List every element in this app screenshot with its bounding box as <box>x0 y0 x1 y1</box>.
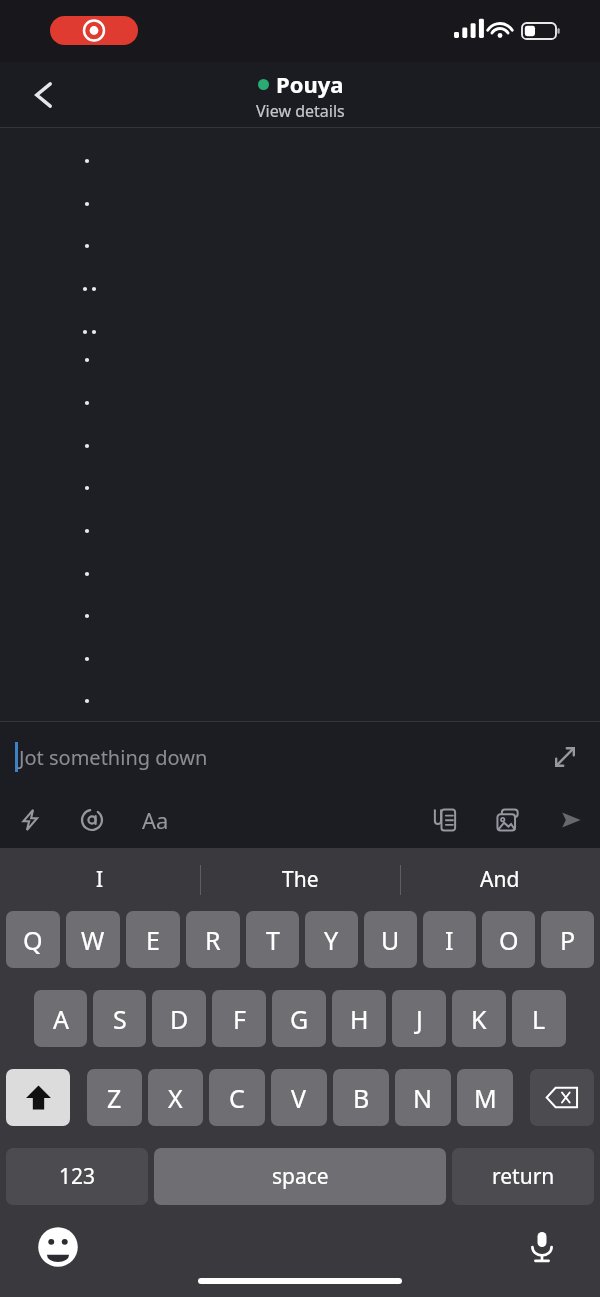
staticText: Pouya <box>276 69 344 99</box>
button[interactable]: Expand composer <box>542 734 588 780</box>
button[interactable]: S <box>93 990 146 1047</box>
button[interactable]: And <box>400 848 600 911</box>
button[interactable]: Send <box>548 797 594 843</box>
staticText: D <box>170 1002 189 1036</box>
button[interactable]: Back <box>20 71 68 119</box>
button[interactable]: U <box>364 911 417 968</box>
button[interactable]: W <box>66 911 120 968</box>
staticText: I <box>445 923 454 957</box>
staticText: View details <box>256 100 345 122</box>
button[interactable]: C <box>209 1069 265 1126</box>
button[interactable]: 123 <box>6 1148 148 1205</box>
button[interactable]: space <box>154 1148 446 1205</box>
button[interactable]: Backspace <box>530 1069 594 1126</box>
staticText: And <box>480 865 520 894</box>
staticText: P <box>560 923 576 957</box>
button[interactable]: V <box>271 1069 327 1126</box>
staticText: H <box>350 1002 369 1036</box>
button[interactable]: X <box>148 1069 203 1126</box>
button[interactable]: M <box>457 1069 513 1126</box>
staticText: J <box>416 1002 423 1036</box>
button[interactable]: Y <box>305 911 358 968</box>
staticText: O <box>499 923 519 957</box>
button[interactable]: J <box>392 990 446 1047</box>
staticText: N <box>413 1081 433 1115</box>
staticText: C <box>229 1081 245 1115</box>
button[interactable]: A <box>34 990 87 1047</box>
button[interactable]: Aa <box>132 797 178 843</box>
button[interactable]: Q <box>6 911 60 968</box>
button[interactable]: T <box>246 911 299 968</box>
button[interactable]: F <box>212 990 266 1047</box>
staticText: T <box>266 923 280 957</box>
staticText: K <box>471 1002 487 1036</box>
button[interactable]: Attach document <box>422 797 468 843</box>
button[interactable]: Shift <box>6 1069 70 1126</box>
button[interactable]: O <box>482 911 535 968</box>
staticText: Aa <box>142 805 169 835</box>
button[interactable]: P <box>541 911 594 968</box>
staticText: 123 <box>59 1162 96 1191</box>
staticText: X <box>168 1081 183 1115</box>
staticText: M <box>474 1081 497 1115</box>
staticText: R <box>205 923 221 957</box>
staticText: space <box>272 1162 329 1191</box>
staticText: return <box>492 1162 555 1191</box>
button[interactable]: Add photo <box>485 797 531 843</box>
button[interactable]: K <box>452 990 506 1047</box>
button[interactable]: Pouya <box>256 69 345 122</box>
button[interactable]: R <box>186 911 240 968</box>
button[interactable]: B <box>333 1069 389 1126</box>
staticText: Q <box>23 923 43 957</box>
button[interactable]: D <box>152 990 206 1047</box>
staticText: A <box>53 1002 69 1036</box>
staticText: L <box>532 1002 546 1036</box>
button[interactable] <box>0 128 600 721</box>
button[interactable]: The <box>200 848 400 911</box>
button[interactable]: Mention someone <box>69 797 115 843</box>
staticText: I <box>96 865 104 894</box>
button[interactable]: N <box>395 1069 451 1126</box>
button[interactable]: E <box>126 911 180 968</box>
staticText: S <box>113 1002 127 1036</box>
button[interactable]: Z <box>87 1069 142 1126</box>
button[interactable]: H <box>332 990 386 1047</box>
button[interactable]: G <box>272 990 326 1047</box>
staticText: The <box>282 865 319 894</box>
staticText: B <box>353 1081 370 1115</box>
button[interactable]: Dictation <box>520 1225 564 1269</box>
button[interactable]: return <box>452 1148 594 1205</box>
button[interactable]: Emoji <box>36 1225 80 1269</box>
staticText: E <box>146 923 160 957</box>
staticText: Jot something down <box>19 744 208 771</box>
staticText: W <box>81 923 105 957</box>
staticText: U <box>381 923 400 957</box>
staticText: G <box>290 1002 309 1036</box>
button[interactable]: L <box>512 990 566 1047</box>
staticText: F <box>233 1002 246 1036</box>
button[interactable]: Shortcuts <box>7 797 53 843</box>
staticText: V <box>291 1081 307 1115</box>
button[interactable]: I <box>423 911 476 968</box>
staticText: Y <box>324 923 339 957</box>
staticText: Z <box>107 1081 122 1115</box>
button[interactable]: I <box>0 848 200 911</box>
button[interactable]: Screen recording <box>50 16 138 45</box>
